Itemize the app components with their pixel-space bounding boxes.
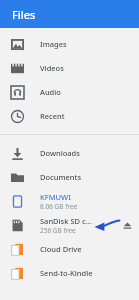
button[interactable]: Documents [0,165,139,189]
staticText: Downloads [40,148,80,158]
button[interactable]: Recent [0,104,139,128]
staticText: Documents [40,172,82,182]
staticText: Cloud Drive [40,244,82,254]
staticText: KFMUWI [40,192,71,202]
staticText: Send-to-Kindle [40,268,93,278]
button[interactable]: KFMUWI [0,189,139,213]
button[interactable]: Videos [0,56,139,80]
staticText: Files [12,7,36,22]
staticText: Images [40,39,67,49]
staticText: Videos [40,63,64,73]
staticText: SanDisk SD card [40,216,94,226]
button[interactable]: Send-to-Kindle [0,261,139,285]
staticText: 8.06 GB free [40,202,78,211]
staticText: Recent [40,111,65,121]
button[interactable]: Images [0,32,139,56]
button[interactable]: SanDisk SD card [0,213,139,237]
staticText: 256 GB free [40,226,76,235]
staticText: Audio [40,87,61,97]
button[interactable]: Downloads [0,141,139,165]
button[interactable]: Cloud Drive [0,237,139,261]
button[interactable]: Eject SD card [122,220,133,231]
button[interactable]: Audio [0,80,139,104]
